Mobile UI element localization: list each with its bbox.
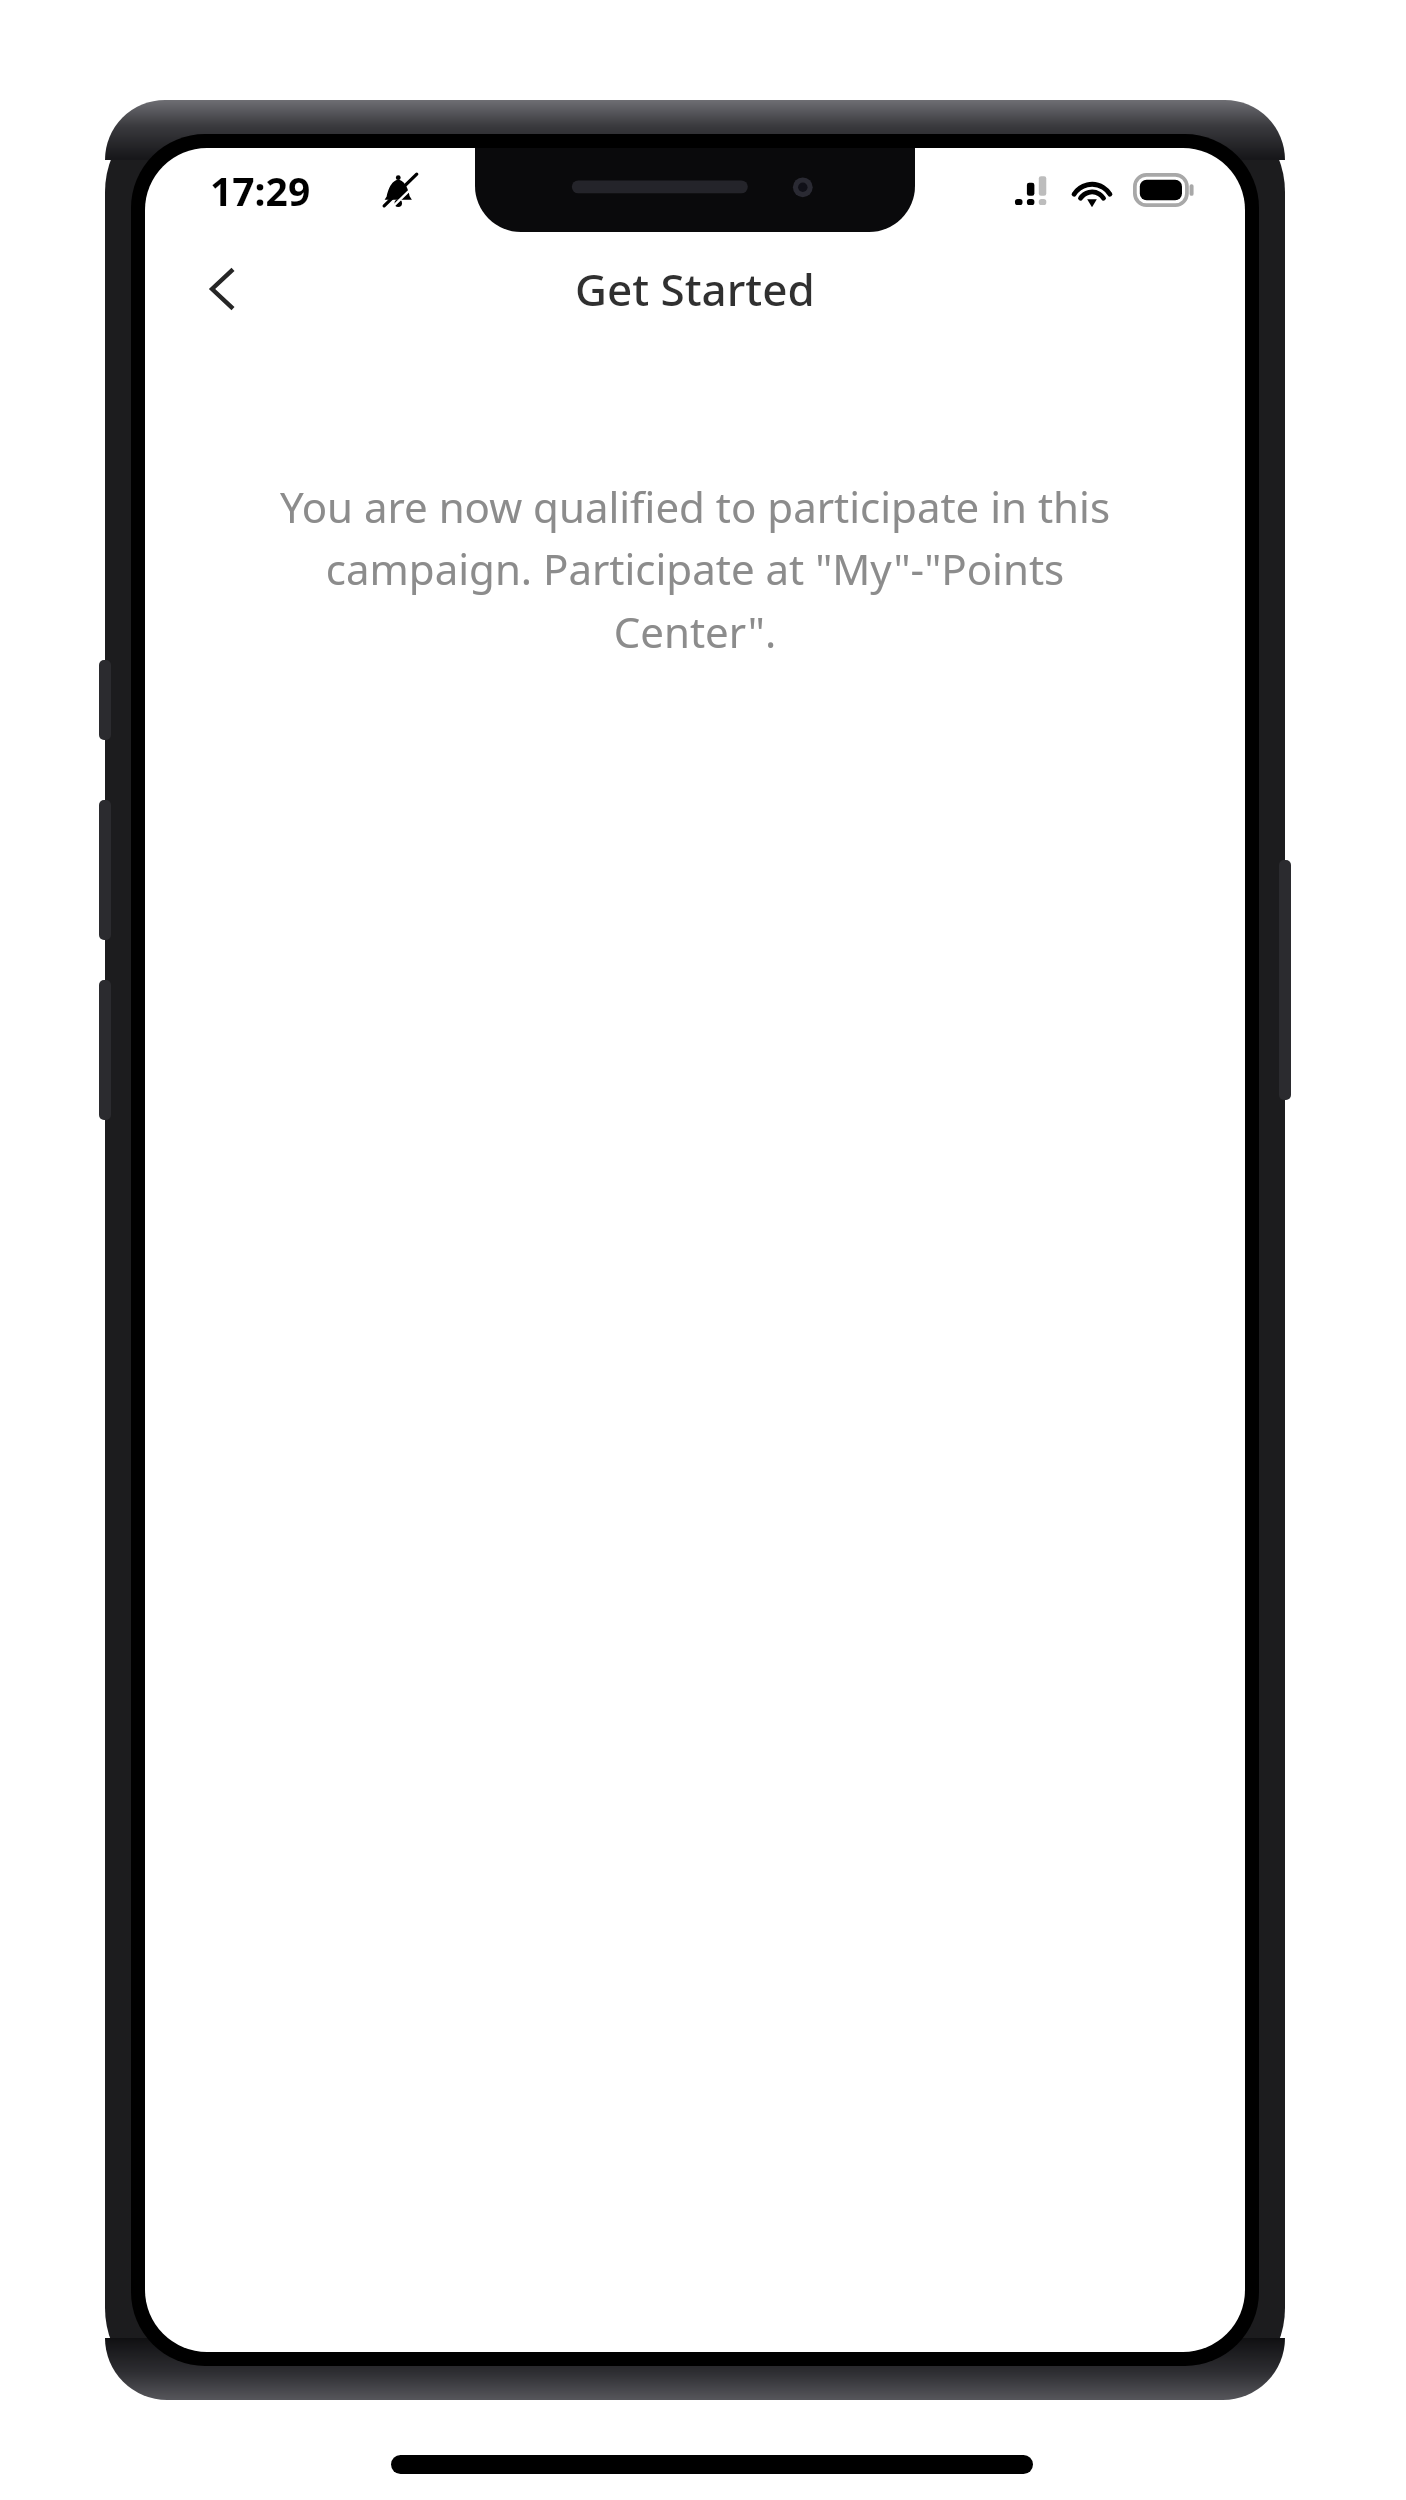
staticText: Get Started (575, 259, 815, 319)
button[interactable]: Back (175, 241, 271, 337)
staticText: You are now qualified to participate in … (278, 478, 1112, 661)
staticText: 17:29 (210, 164, 311, 217)
